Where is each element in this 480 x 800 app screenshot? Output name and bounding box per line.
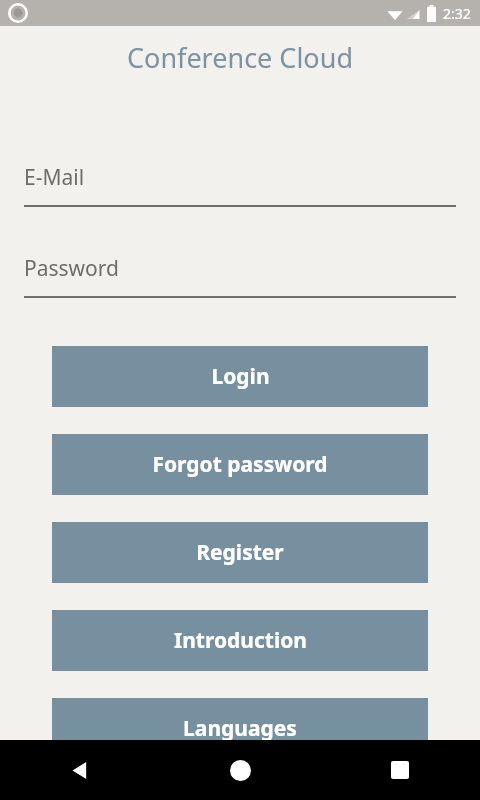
staticText: Introduction [174,626,307,655]
staticText: Password [24,254,119,283]
button[interactable]: E-Mail [24,149,456,207]
button[interactable]: Register [52,522,428,583]
staticText: 2:32 [443,4,471,23]
staticText: Conference Cloud [127,39,353,76]
button[interactable]: Forgot password [52,434,428,495]
staticText: Register [196,538,284,567]
button[interactable]: Login [52,346,428,407]
button[interactable]: Password [24,240,456,298]
staticText: E-Mail [24,163,85,192]
button[interactable]: Introduction [52,610,428,671]
staticText: Login [211,362,270,391]
button[interactable]: Recent apps [320,740,480,800]
staticText: Forgot password [152,450,328,479]
staticText: Languages [183,714,297,743]
button[interactable]: Languages [52,698,428,759]
button[interactable]: Back [0,740,160,800]
button[interactable]: Home [160,740,320,800]
